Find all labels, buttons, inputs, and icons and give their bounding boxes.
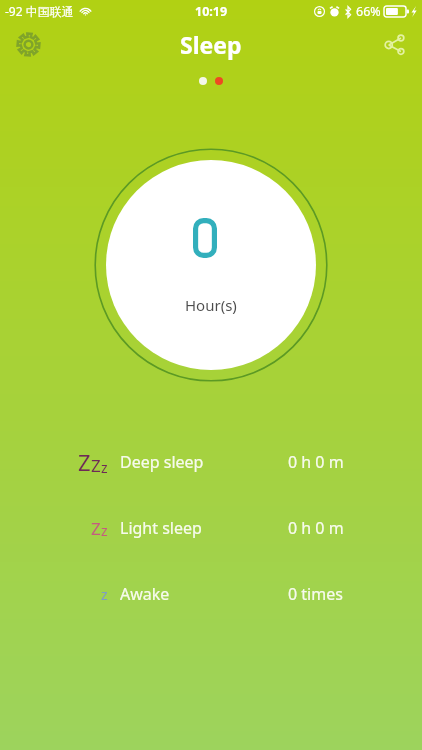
staticText: Awake (120, 583, 170, 605)
staticText: Deep sleep (120, 451, 204, 473)
button[interactable]: z (0, 572, 422, 616)
staticText: z (101, 585, 108, 604)
staticText: -92 中国联通 (5, 3, 74, 19)
staticText: Sleep (180, 29, 242, 60)
staticText: z (101, 521, 108, 540)
staticText: 0 h 0 m (288, 517, 344, 539)
staticText: 0 h 0 m (288, 451, 344, 473)
staticText: 66% (356, 3, 381, 20)
button[interactable] (215, 77, 223, 85)
button[interactable]: Settings (8, 24, 48, 64)
button[interactable]: Share (374, 24, 414, 64)
staticText: 10:19 (195, 3, 228, 20)
staticText: Z (91, 517, 101, 540)
button[interactable]: Z (0, 440, 422, 484)
staticText: Z (78, 447, 91, 477)
staticText: Light sleep (120, 517, 202, 539)
button[interactable] (199, 77, 207, 85)
staticText: Z (91, 454, 101, 477)
staticText: z (101, 458, 108, 477)
staticText: Hour(s) (185, 295, 237, 315)
button[interactable]: Z (0, 506, 422, 550)
staticText: 0 times (288, 583, 343, 605)
